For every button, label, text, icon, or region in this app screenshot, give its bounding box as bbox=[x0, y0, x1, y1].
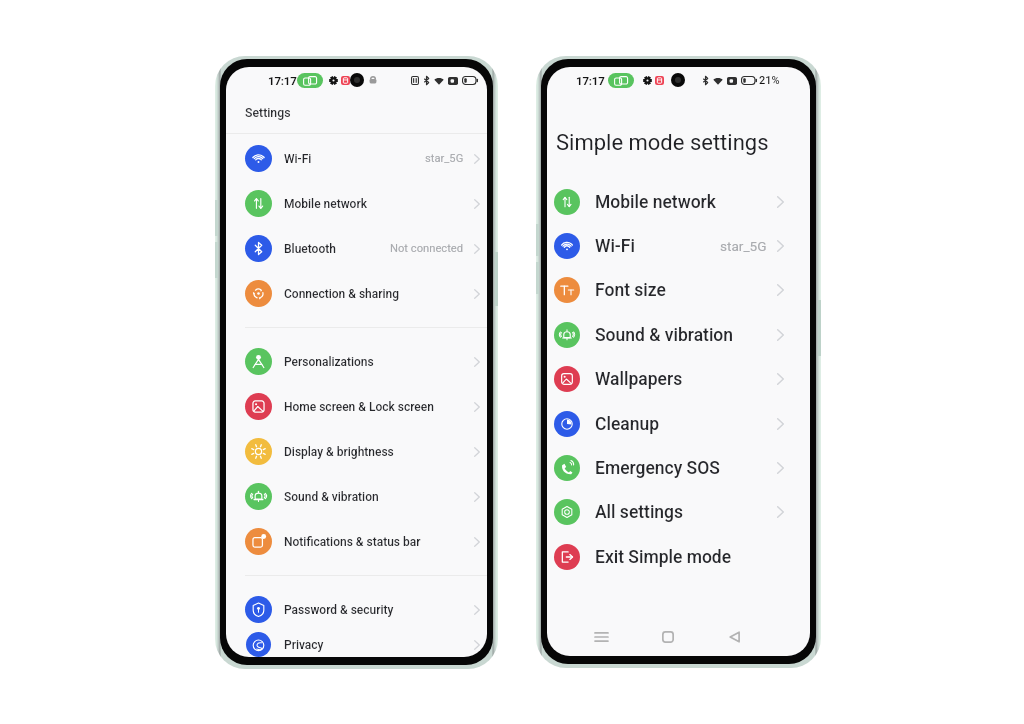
button[interactable]: Display & brightness bbox=[226, 429, 487, 474]
button[interactable]: Home bbox=[651, 621, 685, 653]
staticText: Not connected bbox=[390, 242, 464, 255]
staticText: Settings bbox=[245, 106, 291, 120]
staticText: Simple mode settings bbox=[556, 130, 769, 156]
button[interactable]: Back bbox=[717, 621, 751, 653]
button[interactable]: All settings bbox=[547, 490, 810, 534]
button[interactable]: Wallpapers bbox=[547, 357, 810, 401]
button[interactable]: Home screen & Lock screen bbox=[226, 384, 487, 429]
button[interactable]: Cleanup bbox=[547, 402, 810, 446]
button[interactable]: Privacy bbox=[226, 632, 487, 657]
staticText: Display & brightness bbox=[284, 445, 394, 459]
staticText: All settings bbox=[595, 502, 684, 523]
staticText: Sound & vibration bbox=[595, 325, 734, 346]
button[interactable]: Exit Simple mode bbox=[547, 535, 810, 579]
button[interactable]: Mobile network bbox=[226, 181, 487, 226]
staticText: 17:17 bbox=[576, 74, 605, 87]
staticText: Mobile network bbox=[595, 192, 716, 213]
button[interactable]: Personalizations bbox=[226, 339, 487, 384]
staticText: Wi-Fi bbox=[595, 236, 635, 257]
button[interactable]: Wi-Fi bbox=[226, 136, 487, 181]
staticText: star_5G bbox=[720, 238, 767, 254]
staticText: Personalizations bbox=[284, 355, 374, 369]
button[interactable]: Notifications & status bar bbox=[226, 519, 487, 564]
staticText: Font size bbox=[595, 280, 666, 301]
button[interactable]: Sound & vibration bbox=[547, 313, 810, 357]
staticText: Mobile network bbox=[284, 197, 367, 211]
staticText: Password & security bbox=[284, 603, 394, 617]
button[interactable]: Mobile network bbox=[547, 180, 810, 224]
staticText: Emergency SOS bbox=[595, 458, 720, 479]
staticText: Exit Simple mode bbox=[595, 547, 732, 568]
button[interactable]: Bluetooth bbox=[226, 226, 487, 271]
button[interactable]: Emergency SOS bbox=[547, 446, 810, 490]
staticText: 17:17 bbox=[268, 74, 297, 87]
button[interactable]: Sound & vibration bbox=[226, 474, 487, 519]
staticText: Wi-Fi bbox=[284, 152, 312, 166]
staticText: star_5G bbox=[425, 152, 464, 165]
staticText: Notifications & status bar bbox=[284, 535, 421, 549]
staticText: Sound & vibration bbox=[284, 490, 379, 504]
staticText: Home screen & Lock screen bbox=[284, 400, 434, 414]
button[interactable]: Font size bbox=[547, 268, 810, 312]
staticText: Wallpapers bbox=[595, 369, 683, 390]
staticText: Connection & sharing bbox=[284, 287, 399, 301]
staticText: Cleanup bbox=[595, 414, 660, 435]
staticText: Bluetooth bbox=[284, 242, 336, 256]
button[interactable]: Password & security bbox=[226, 587, 487, 632]
button[interactable]: Wi-Fi bbox=[547, 224, 810, 268]
button[interactable]: Recent apps bbox=[584, 621, 618, 653]
staticText: Privacy bbox=[284, 638, 324, 652]
staticText: 21% bbox=[759, 74, 780, 87]
button[interactable]: Connection & sharing bbox=[226, 271, 487, 316]
